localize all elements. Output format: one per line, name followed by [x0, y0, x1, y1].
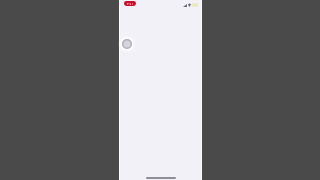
button[interactable]: Loading	[122, 39, 132, 49]
button[interactable]	[124, 1, 136, 6]
